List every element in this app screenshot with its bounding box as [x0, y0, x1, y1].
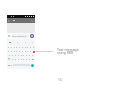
- other: Back: [8, 20, 10, 22]
- staticText: 14: [58, 78, 62, 82]
- other: Send: [30, 34, 34, 38]
- staticText: Text message using SMS: [57, 47, 79, 55]
- other: Call: [31, 20, 33, 22]
- staticText: Text message: [12, 35, 26, 38]
